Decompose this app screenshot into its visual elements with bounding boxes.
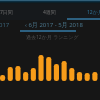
staticText: ‹ 6月 2017 - 5月 2018	[25, 21, 83, 29]
button[interactable]: 4週間	[33, 4, 67, 20]
staticText: 017	[0, 21, 10, 29]
staticText: 4週間	[43, 9, 56, 16]
staticText: 7日間	[0, 9, 13, 16]
staticText: 過去12か月 ランニング	[26, 34, 79, 41]
button[interactable]: 7日間	[0, 4, 33, 20]
staticText: 12か月	[87, 9, 100, 16]
button[interactable]: 12か月	[67, 4, 100, 20]
